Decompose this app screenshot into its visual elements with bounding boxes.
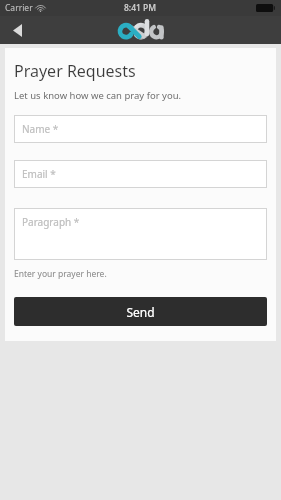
button[interactable]: Email *	[14, 160, 267, 188]
staticText: Enter your prayer here.	[14, 268, 107, 280]
staticText: Paragraph *	[22, 215, 80, 229]
button[interactable]: Back	[0, 16, 34, 44]
button[interactable]: Name *	[14, 115, 267, 143]
button[interactable]: Paragraph *	[14, 208, 267, 260]
staticText: Send	[126, 304, 155, 320]
button[interactable]: Send	[14, 297, 267, 326]
staticText: Prayer Requests	[14, 60, 136, 82]
staticText: 8:41 PM	[124, 2, 157, 14]
staticText: Email *	[22, 167, 56, 181]
staticText: Name *	[22, 122, 59, 136]
staticText: Carrier	[5, 2, 33, 14]
staticText: Let us know how we can pray for you.	[14, 89, 182, 102]
